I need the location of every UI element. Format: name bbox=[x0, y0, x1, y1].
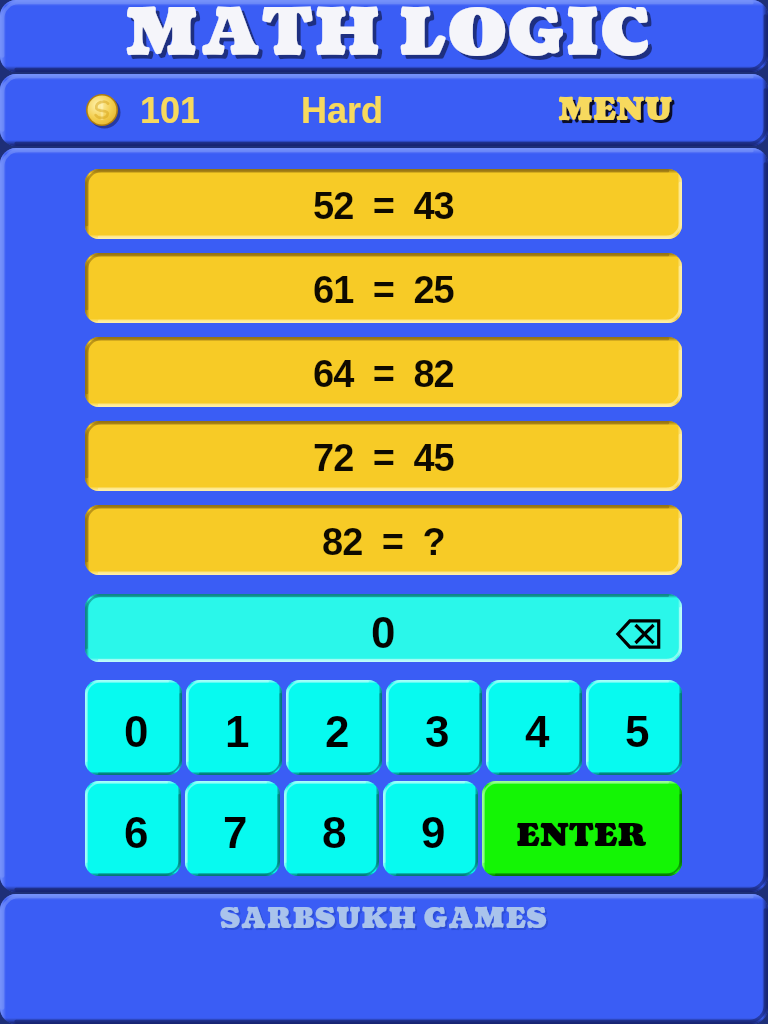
button[interactable]: 82 = ? bbox=[85, 505, 682, 575]
staticText: 9 bbox=[421, 808, 446, 857]
staticText: MATH LOGIC bbox=[129, 0, 656, 65]
staticText: MENU bbox=[558, 88, 673, 132]
staticText: 1 bbox=[225, 707, 250, 756]
button[interactable]: 7 bbox=[185, 781, 280, 876]
staticText: 61 = 25 bbox=[313, 269, 454, 311]
button[interactable]: Hard bbox=[301, 90, 384, 130]
button[interactable]: Backspace bbox=[612, 614, 664, 654]
button[interactable]: 101 bbox=[86, 90, 201, 130]
staticText: 4 bbox=[525, 707, 550, 756]
button[interactable]: 0 bbox=[85, 680, 182, 775]
button[interactable]: 64 = 82 bbox=[85, 337, 682, 407]
button[interactable]: 0 bbox=[85, 594, 682, 662]
button[interactable]: 4 bbox=[486, 680, 582, 775]
staticText: 5 bbox=[625, 707, 650, 756]
staticText: 2 bbox=[325, 707, 350, 756]
button[interactable]: 72 = 45 bbox=[85, 421, 682, 491]
staticText: MENU bbox=[561, 91, 676, 135]
staticText: SARBSUKH GAMES bbox=[222, 902, 550, 940]
button[interactable]: 8 bbox=[284, 781, 379, 876]
button[interactable]: 3 bbox=[386, 680, 482, 775]
staticText: 52 = 43 bbox=[313, 185, 454, 227]
staticText: 72 = 45 bbox=[313, 437, 454, 479]
staticText: 0 bbox=[371, 608, 396, 657]
staticText: 7 bbox=[223, 808, 248, 857]
button[interactable]: 61 = 25 bbox=[85, 253, 682, 323]
button[interactable]: 5 bbox=[586, 680, 682, 775]
staticText: ENTER bbox=[516, 813, 647, 858]
staticText: SARBSUKH GAMES bbox=[220, 900, 548, 938]
button[interactable]: 1 bbox=[186, 680, 282, 775]
button[interactable]: MENU bbox=[558, 88, 673, 132]
staticText: 0 bbox=[124, 707, 149, 756]
button[interactable]: 6 bbox=[85, 781, 181, 876]
staticText: 101 bbox=[140, 90, 201, 130]
button[interactable]: 52 = 43 bbox=[85, 169, 682, 239]
button[interactable]: ENTER bbox=[482, 781, 682, 876]
staticText: 82 = ? bbox=[322, 521, 445, 563]
staticText: MATH LOGIC bbox=[125, 0, 652, 61]
staticText: 8 bbox=[322, 808, 347, 857]
staticText: 64 = 82 bbox=[313, 353, 454, 395]
button[interactable]: 2 bbox=[286, 680, 382, 775]
button[interactable]: 9 bbox=[383, 781, 478, 876]
staticText: 6 bbox=[124, 808, 149, 857]
staticText: 3 bbox=[425, 707, 450, 756]
